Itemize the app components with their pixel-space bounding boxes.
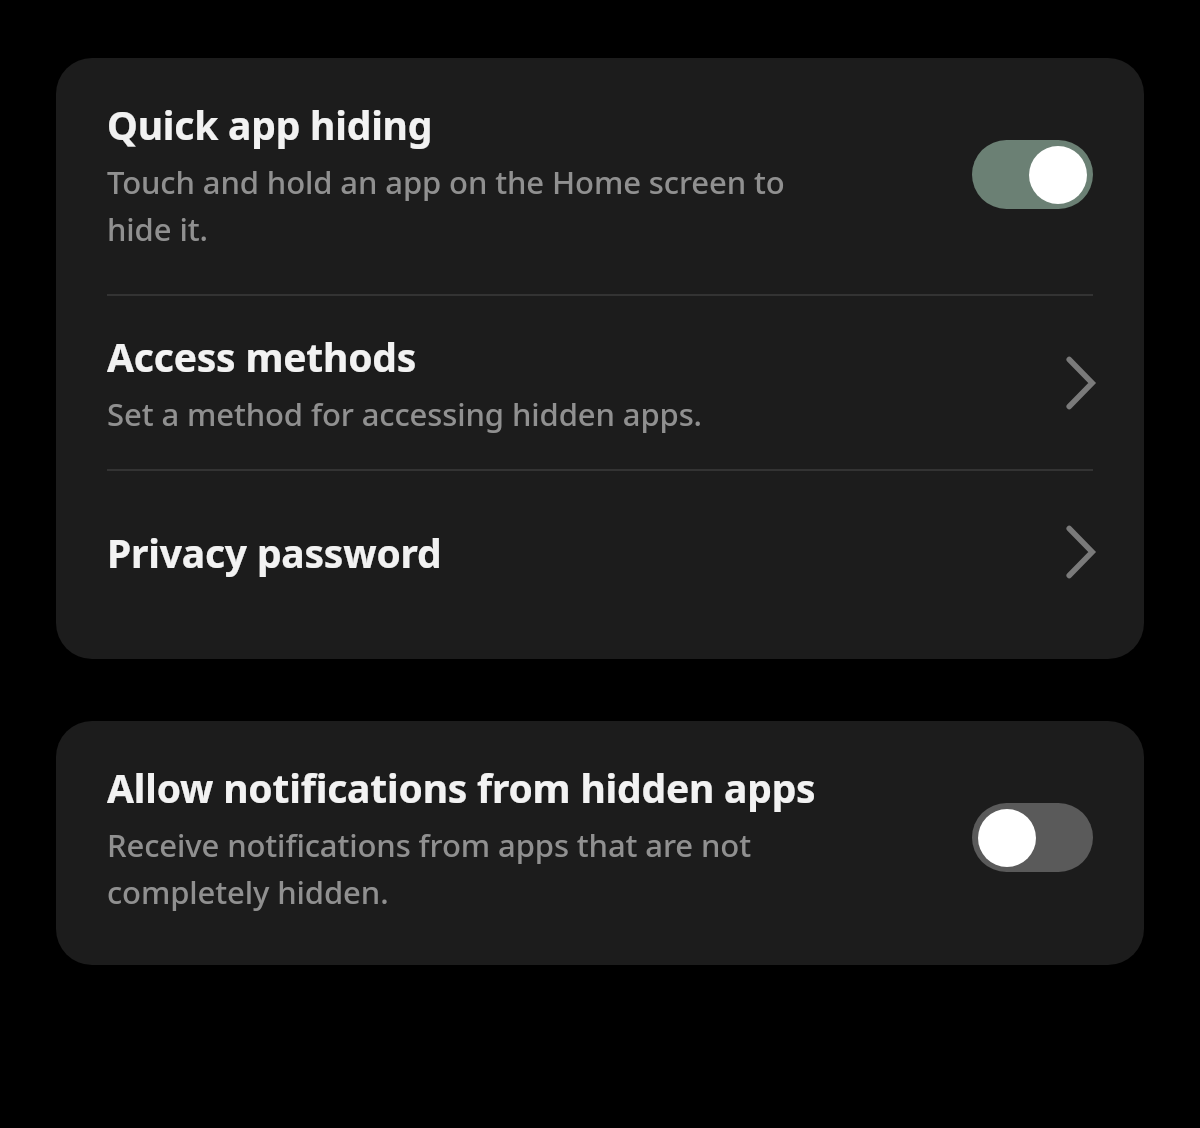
other: Privacy password, open (1059, 523, 1093, 581)
other: Access methods, open (1059, 354, 1093, 412)
staticText: Receive notifications from apps that are… (107, 824, 852, 913)
button[interactable]: Privacy password (56, 471, 1144, 659)
button[interactable]: Access methods (56, 296, 1144, 469)
button[interactable]: Quick app hiding (56, 58, 1144, 294)
staticText: Set a method for accessing hidden apps. (107, 393, 702, 435)
staticText: Privacy password (107, 526, 442, 579)
staticText: Touch and hold an app on the Home screen… (107, 161, 847, 250)
staticText: Access methods (107, 330, 417, 383)
staticText: Allow notifications from hidden apps (107, 761, 816, 814)
button[interactable]: Toggle on (972, 140, 1093, 209)
staticText: Quick app hiding (107, 98, 433, 151)
button[interactable]: Allow notifications from hidden apps (56, 721, 1144, 965)
button[interactable]: Toggle off (972, 803, 1093, 872)
